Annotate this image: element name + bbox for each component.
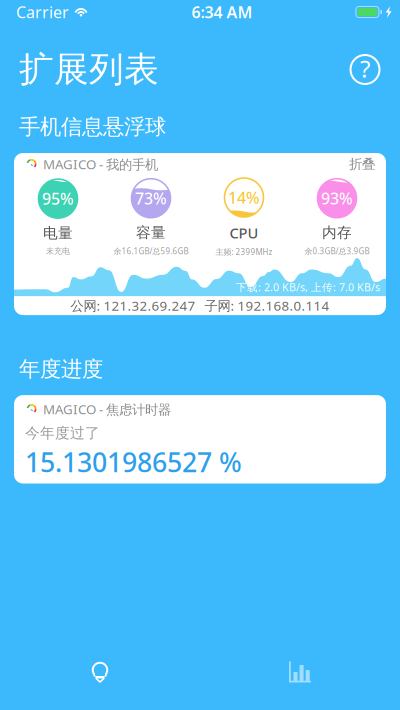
button[interactable]: Help	[349, 53, 381, 85]
staticText: ?	[360, 53, 370, 84]
staticText: 未充电	[46, 246, 70, 256]
staticText: 内存	[322, 224, 352, 242]
staticText: 手机信息悬浮球	[19, 114, 166, 140]
staticText: 余16.1GB/总59.6GB	[113, 246, 188, 256]
staticText: MAGICO - 我的手机	[43, 155, 158, 173]
staticText: 电量	[43, 224, 73, 242]
staticText: 折叠	[349, 156, 375, 172]
staticText: 扩展列表	[19, 48, 159, 91]
staticText: 6:34 AM	[191, 1, 252, 23]
staticText: 93%	[321, 188, 353, 209]
staticText: Carrier	[16, 1, 69, 23]
staticText: 公网: 121.32.69.247 子网: 192.168.0.114	[70, 297, 329, 314]
staticText: 今年度过了	[25, 424, 100, 442]
staticText: 15.1301986527 %	[25, 444, 242, 479]
staticText: 95%	[42, 188, 74, 209]
staticText: 余0.3GB/总3.9GB	[304, 246, 369, 256]
staticText: 下载: 2.0 KB/s, 上传: 7.0 KB/s	[236, 280, 380, 294]
button[interactable]: Statistics	[200, 648, 400, 696]
staticText: CPU	[229, 223, 258, 242]
staticText: 年度进度	[19, 356, 103, 382]
staticText: 主频: 2399MHz	[215, 246, 272, 257]
staticText: 73%	[135, 188, 167, 209]
button[interactable]: Floating ball	[0, 648, 200, 696]
staticText: 容量	[136, 224, 166, 242]
staticText: MAGICO - 焦虑计时器	[43, 400, 171, 418]
staticText: 14%	[228, 187, 260, 208]
